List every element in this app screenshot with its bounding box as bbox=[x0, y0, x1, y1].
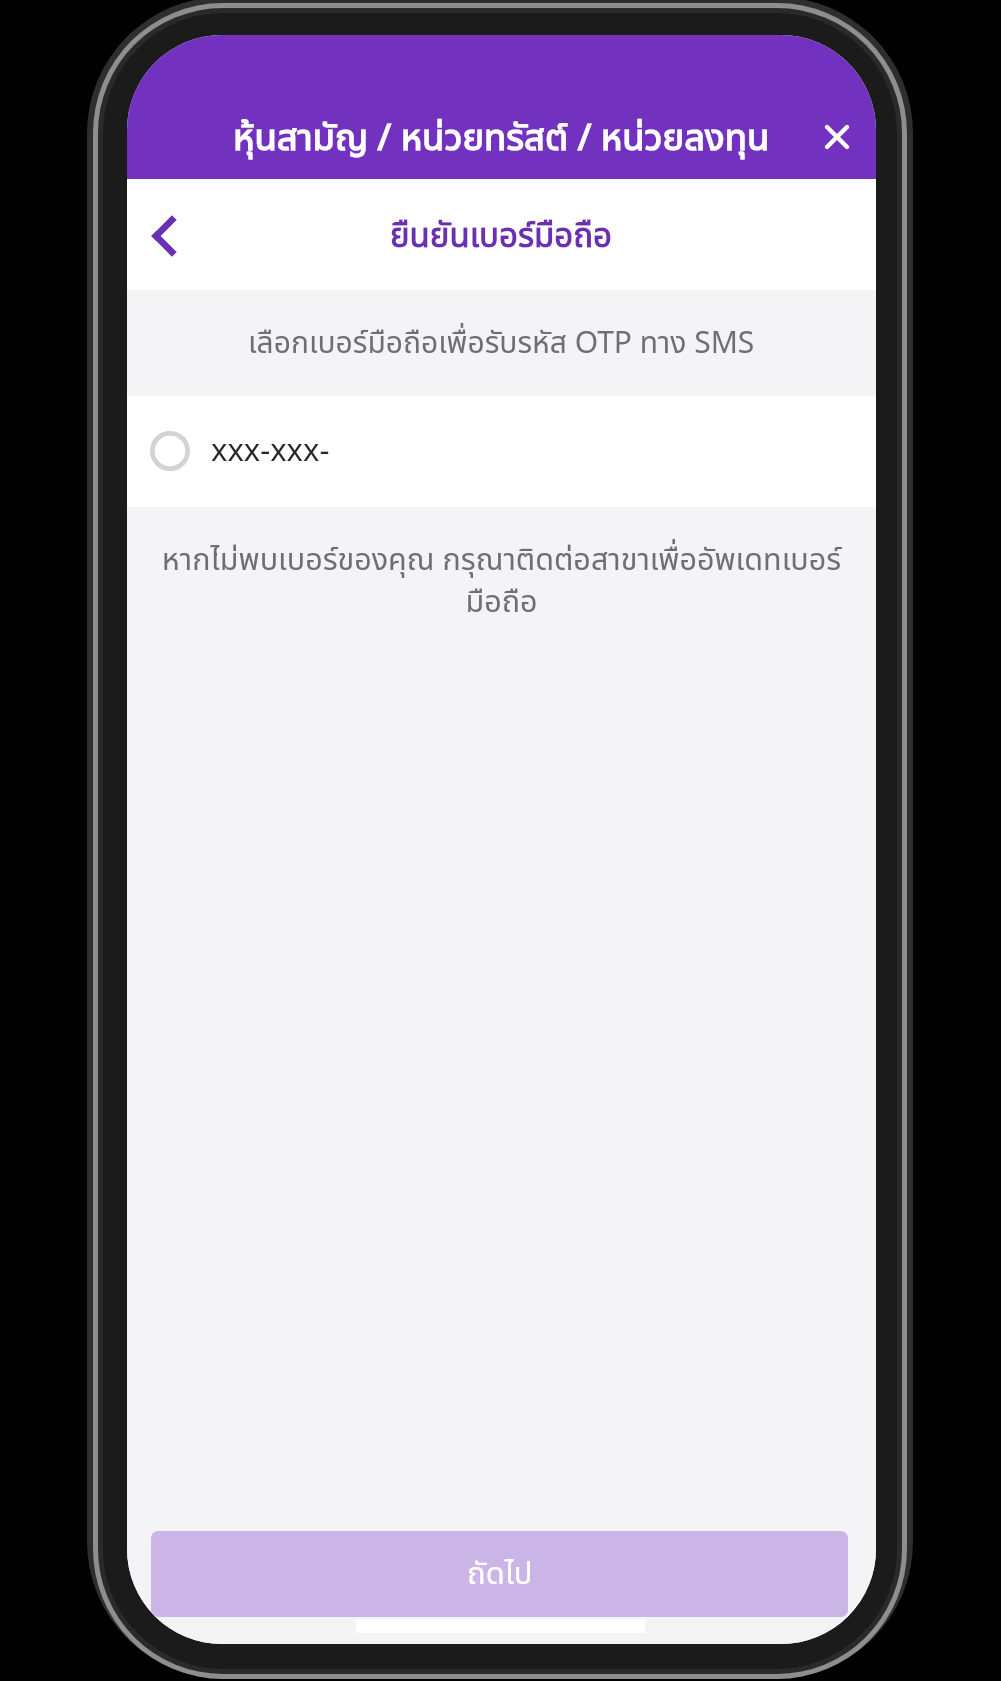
button[interactable]: ถัดไป bbox=[151, 1531, 848, 1617]
staticText: ถัดไป bbox=[467, 1551, 533, 1598]
staticText: หุ้นสามัญ / หน่วยทรัสต์ / หน่วยลงทุน bbox=[233, 111, 770, 166]
staticText: xxx-xxx- bbox=[211, 428, 330, 475]
staticText: เลือกเบอร์มือถือเพื่อรับรหัส OTP ทาง SMS bbox=[248, 321, 755, 366]
staticText: ยืนยันเบอร์มือถือ bbox=[390, 212, 613, 262]
button[interactable]: Back bbox=[136, 208, 192, 264]
button[interactable]: xxx-xxx- bbox=[127, 396, 876, 507]
staticText: หากไม่พบเบอร์ของคุณ กรุณาติดต่อสาขาเพื่อ… bbox=[147, 538, 856, 626]
button[interactable]: Close bbox=[806, 106, 868, 168]
